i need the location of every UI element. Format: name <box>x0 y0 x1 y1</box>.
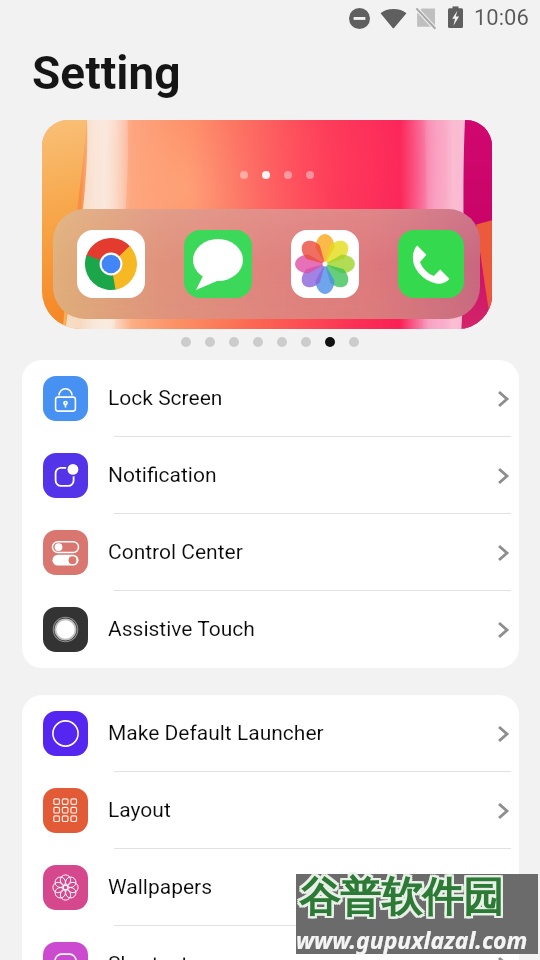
button[interactable]: Layout <box>22 772 519 849</box>
staticText: Control Center <box>108 540 243 565</box>
button[interactable]: Control Center <box>22 514 519 591</box>
staticText: Wallpapers <box>108 875 213 900</box>
staticText: Lock Screen <box>108 386 223 411</box>
staticText: Assistive Touch <box>108 617 255 642</box>
staticText: 10:06 <box>474 5 529 31</box>
staticText: www.gupuxlazal.com <box>296 924 528 955</box>
button[interactable]: Shortcuts <box>22 926 519 960</box>
staticText: Layout <box>108 798 171 823</box>
staticText: 谷普软件园 <box>299 874 504 926</box>
button[interactable]: Messages <box>184 230 252 298</box>
button[interactable]: Phone <box>398 230 464 298</box>
staticText: 谷普软件园 <box>301 874 506 926</box>
staticText: 谷普软件园 <box>299 870 504 922</box>
button[interactable]: Chrome <box>77 230 145 298</box>
staticText: 谷普软件园 <box>301 872 506 924</box>
staticText: Setting <box>32 46 181 100</box>
button[interactable]: Wallpapers <box>22 849 519 926</box>
staticText: 谷普软件园 <box>297 874 502 926</box>
staticText: Shortcuts <box>108 952 199 960</box>
button[interactable]: Make Default Launcher <box>22 695 519 772</box>
button[interactable]: Notification <box>22 437 519 514</box>
button[interactable]: Assistive Touch <box>22 591 519 668</box>
staticText: Make Default Launcher <box>108 721 324 746</box>
button[interactable]: Photos <box>291 230 359 298</box>
staticText: 谷普软件园 <box>299 872 504 924</box>
staticText: 谷普软件园 <box>301 870 506 922</box>
staticText: Notification <box>108 463 217 488</box>
button[interactable]: Lock Screen <box>22 360 519 437</box>
staticText: 谷普软件园 <box>297 872 502 924</box>
staticText: 谷普软件园 <box>297 870 502 922</box>
